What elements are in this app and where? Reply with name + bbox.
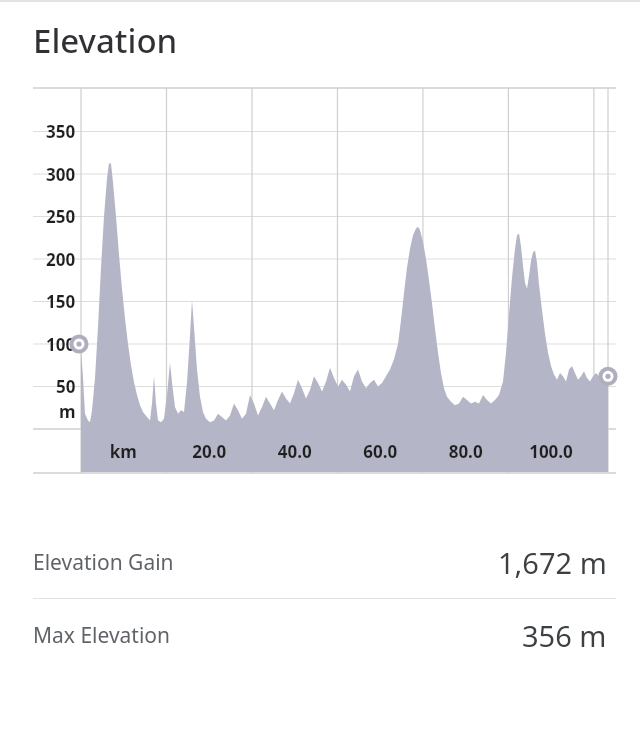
- button[interactable]: [0, 88, 640, 473]
- button[interactable]: Max Elevation: [0, 599, 640, 671]
- staticText: Max Elevation: [33, 621, 171, 650]
- staticText: 356 m: [522, 616, 607, 655]
- staticText: 1,672 m: [498, 543, 607, 582]
- staticText: Elevation Gain: [33, 548, 174, 577]
- button[interactable]: Elevation Gain: [0, 526, 640, 598]
- staticText: Elevation: [33, 18, 178, 63]
